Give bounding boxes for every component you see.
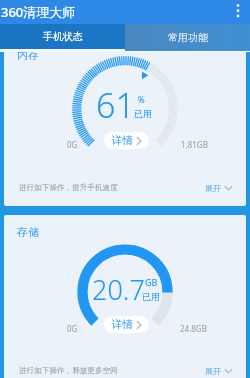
button[interactable]: 展开 <box>205 366 233 376</box>
button[interactable]: 详情 <box>104 132 149 149</box>
button[interactable]: More options <box>224 0 250 24</box>
staticText: GB <box>145 276 158 288</box>
staticText: 进行如下操作，提升手机速度 <box>19 183 118 193</box>
staticText: 已用 <box>134 108 152 119</box>
staticText: 0G <box>67 323 78 334</box>
staticText: 24.8GB <box>180 323 207 334</box>
button[interactable]: 详情 <box>104 316 149 333</box>
staticText: 存储 <box>17 225 39 239</box>
staticText: 0G <box>67 139 78 150</box>
staticText: 常用功能 <box>168 31 208 44</box>
staticText: 360清理大师 <box>1 3 76 21</box>
staticText: % <box>138 94 145 105</box>
staticText: 1,81GB <box>181 139 208 150</box>
button[interactable]: 手机状态 <box>0 24 125 52</box>
staticText: 手机状态 <box>43 30 83 43</box>
staticText: 20.7 <box>92 271 145 308</box>
staticText: 展开 <box>205 183 221 193</box>
staticText: 已用 <box>142 291 160 302</box>
staticText: 进行如下操作，释放更多空间 <box>19 366 118 376</box>
staticText: 展开 <box>205 366 221 376</box>
staticText: 详情 <box>112 318 133 331</box>
staticText: 详情 <box>112 134 133 147</box>
button[interactable]: 常用功能 <box>125 24 250 52</box>
button[interactable]: 展开 <box>205 183 233 193</box>
staticText: 61 <box>96 82 135 128</box>
staticText: 内存 <box>17 48 39 62</box>
